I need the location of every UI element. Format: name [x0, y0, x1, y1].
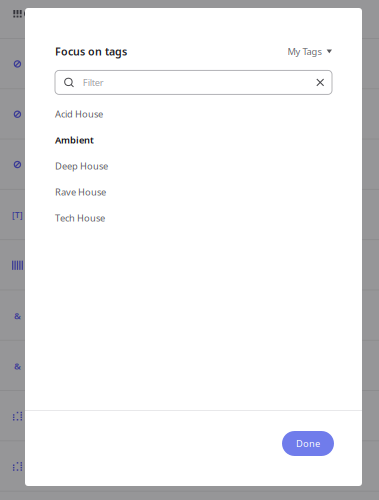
button[interactable]: Tech House	[55, 205, 332, 231]
button[interactable]: Rave House	[55, 179, 332, 205]
button[interactable]: Acid House	[55, 101, 332, 127]
staticText: My Tags	[288, 45, 322, 58]
staticText: Tech House	[55, 212, 105, 224]
staticText: Focus on tags	[55, 44, 127, 58]
staticText: &	[14, 360, 21, 372]
button[interactable]: Clear filter	[316, 78, 324, 86]
staticText: Deep House	[55, 160, 108, 172]
button[interactable]: Ambient	[55, 127, 332, 153]
button[interactable]: Deep House	[55, 153, 332, 179]
staticText: Filter	[83, 76, 104, 89]
staticText: Done	[296, 437, 320, 450]
staticText: Acid House	[55, 108, 103, 120]
staticText: Ambient	[55, 134, 94, 146]
staticText: [T]	[12, 210, 23, 220]
staticText: Rave House	[55, 186, 106, 198]
staticText: &	[14, 309, 21, 322]
button[interactable]: My Tags	[288, 45, 332, 58]
button[interactable]: Done	[282, 431, 334, 456]
